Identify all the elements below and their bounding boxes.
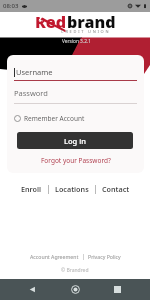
button[interactable]: Forgot your Password? bbox=[41, 156, 111, 165]
staticText: Version 3.2.1 bbox=[62, 38, 91, 45]
staticText: Contact bbox=[102, 184, 130, 194]
staticText: Log in bbox=[64, 136, 86, 146]
staticText: Username bbox=[16, 67, 53, 77]
button[interactable]: Locations bbox=[49, 182, 95, 196]
button[interactable]: Contact bbox=[96, 182, 136, 196]
staticText: brand bbox=[67, 11, 116, 33]
button[interactable]: Home bbox=[65, 279, 86, 300]
button[interactable]: Back bbox=[22, 279, 43, 300]
button[interactable]: Account Agreement bbox=[30, 253, 79, 260]
staticText: Password bbox=[14, 88, 48, 98]
button[interactable]: Privacy Policy bbox=[88, 253, 121, 260]
staticText: 08:03 bbox=[3, 2, 19, 10]
staticText: © Brandred bbox=[61, 267, 89, 274]
staticText: Remember Account bbox=[24, 114, 85, 123]
staticText: Locations bbox=[55, 184, 89, 194]
button[interactable]: Enroll bbox=[15, 182, 48, 196]
button[interactable]: Recent apps bbox=[107, 279, 128, 300]
button[interactable]: Log in bbox=[17, 132, 133, 149]
button[interactable]: Remember Account bbox=[14, 113, 85, 124]
staticText: C R E D I T U N I O N bbox=[61, 29, 109, 34]
staticText: Enroll bbox=[21, 184, 42, 194]
staticText: Red bbox=[35, 11, 67, 33]
